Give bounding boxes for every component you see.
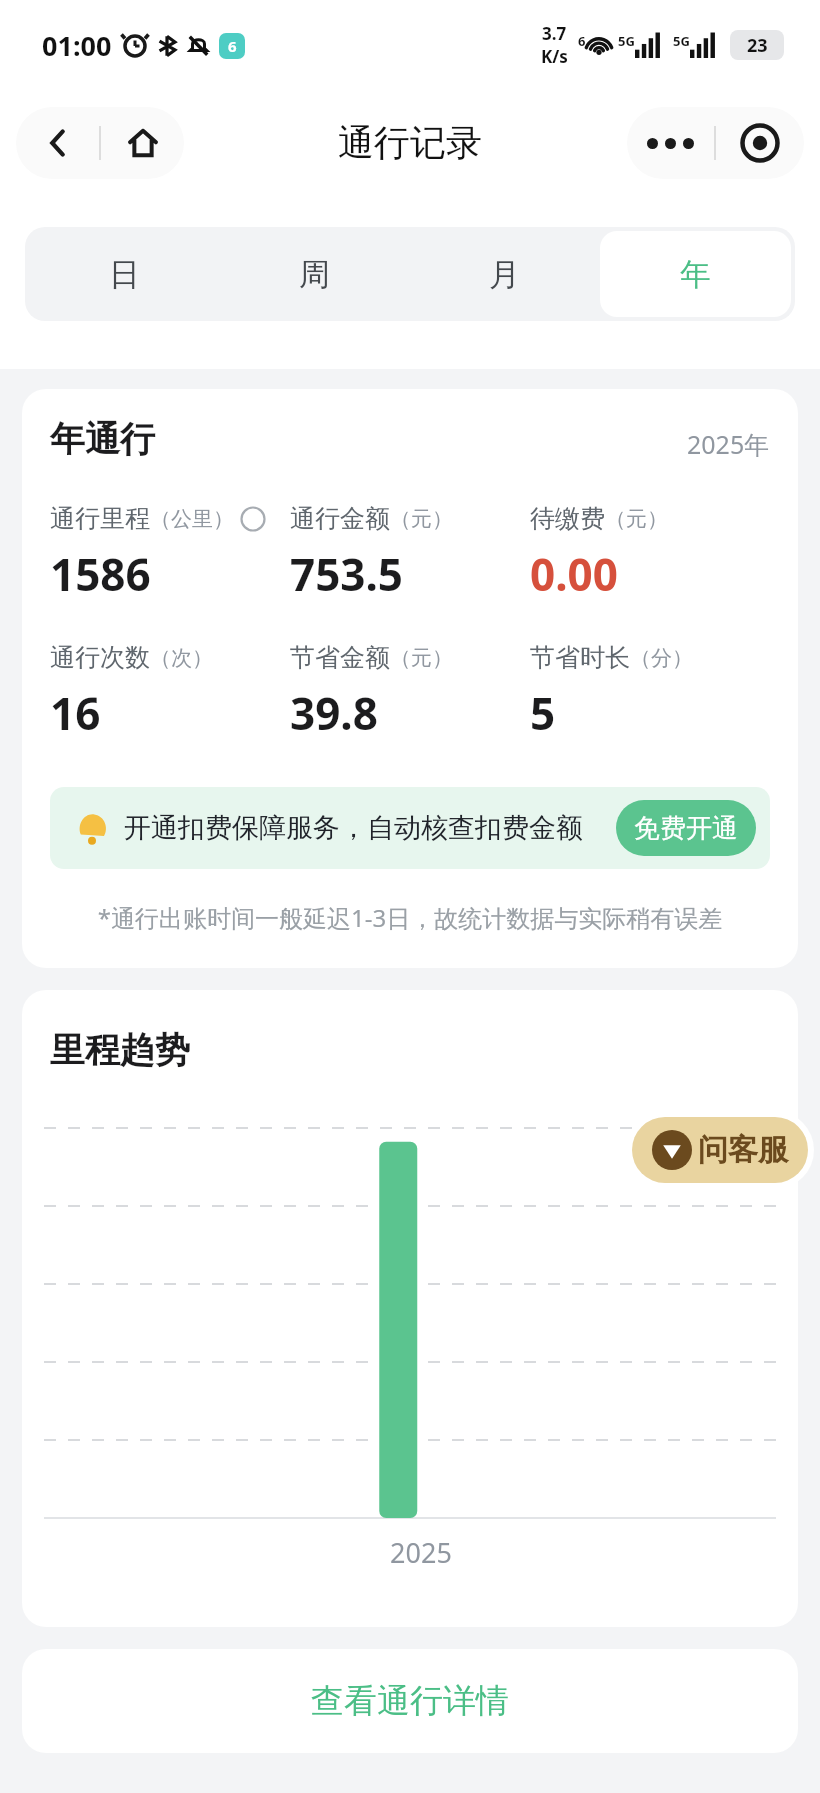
button[interactable]: 开通扣费保障服务，自动核查扣费金额 [50,787,770,869]
staticText: *通行出账时间一般延迟1-3日，故统计数据与实际稍有误差 [50,901,770,934]
staticText: 通行金额 [290,503,390,534]
staticText: 免费开通 [634,812,738,845]
staticText: 查看通行详情 [311,1680,509,1722]
staticText: （元） [390,645,453,671]
button[interactable]: 查看通行详情 [22,1649,798,1753]
staticText: 2025年 [687,427,770,461]
button[interactable]: 免费开通 [616,800,756,856]
button[interactable]: 年 [600,231,791,317]
staticText: 5G [618,32,635,50]
staticText: 753.5 [290,544,404,604]
staticText: 16 [50,683,101,743]
staticText: （元） [605,506,668,532]
staticText: 2025 [44,1534,798,1571]
staticText: 1586 [50,544,151,604]
staticText: 5 [530,683,556,743]
staticText: 里程趋势 [50,1028,190,1072]
button[interactable]: 周 [219,231,409,317]
staticText: K/s [541,45,568,68]
staticText: （公里） [150,506,234,532]
staticText: 6 [228,36,237,56]
button[interactable]: More options [627,107,714,179]
button[interactable]: 日 [29,231,219,317]
staticText: 通行里程 [50,503,150,534]
staticText: 通行次数 [50,642,150,673]
staticText: （分） [630,645,693,671]
staticText: 年通行 [50,417,155,461]
staticText: 39.8 [290,683,378,743]
button[interactable]: 月 [409,231,600,317]
staticText: 周 [299,255,330,294]
staticText: 开通扣费保障服务，自动核查扣费金额 [124,811,583,845]
staticText: 节省金额 [290,642,390,673]
staticText: 问客服 [698,1131,788,1169]
staticText: 01:00 [42,27,112,64]
staticText: 6 [578,32,586,50]
staticText: 月 [489,255,520,294]
button[interactable]: Home [101,107,184,179]
staticText: 3.7 [542,22,567,45]
staticText: （次） [150,645,213,671]
staticText: （元） [390,506,453,532]
staticText: 待缴费 [530,503,605,534]
staticText: 0.00 [530,544,618,604]
staticText: 日 [109,255,140,294]
button[interactable]: Back [16,107,99,179]
staticText: 通行记录 [338,120,482,165]
staticText: 23 [747,33,768,58]
staticText: 5G [673,32,690,50]
staticText: 年 [680,255,711,294]
button[interactable]: Close [716,107,804,179]
button[interactable]: 问客服 [632,1117,808,1183]
staticText: 节省时长 [530,642,630,673]
